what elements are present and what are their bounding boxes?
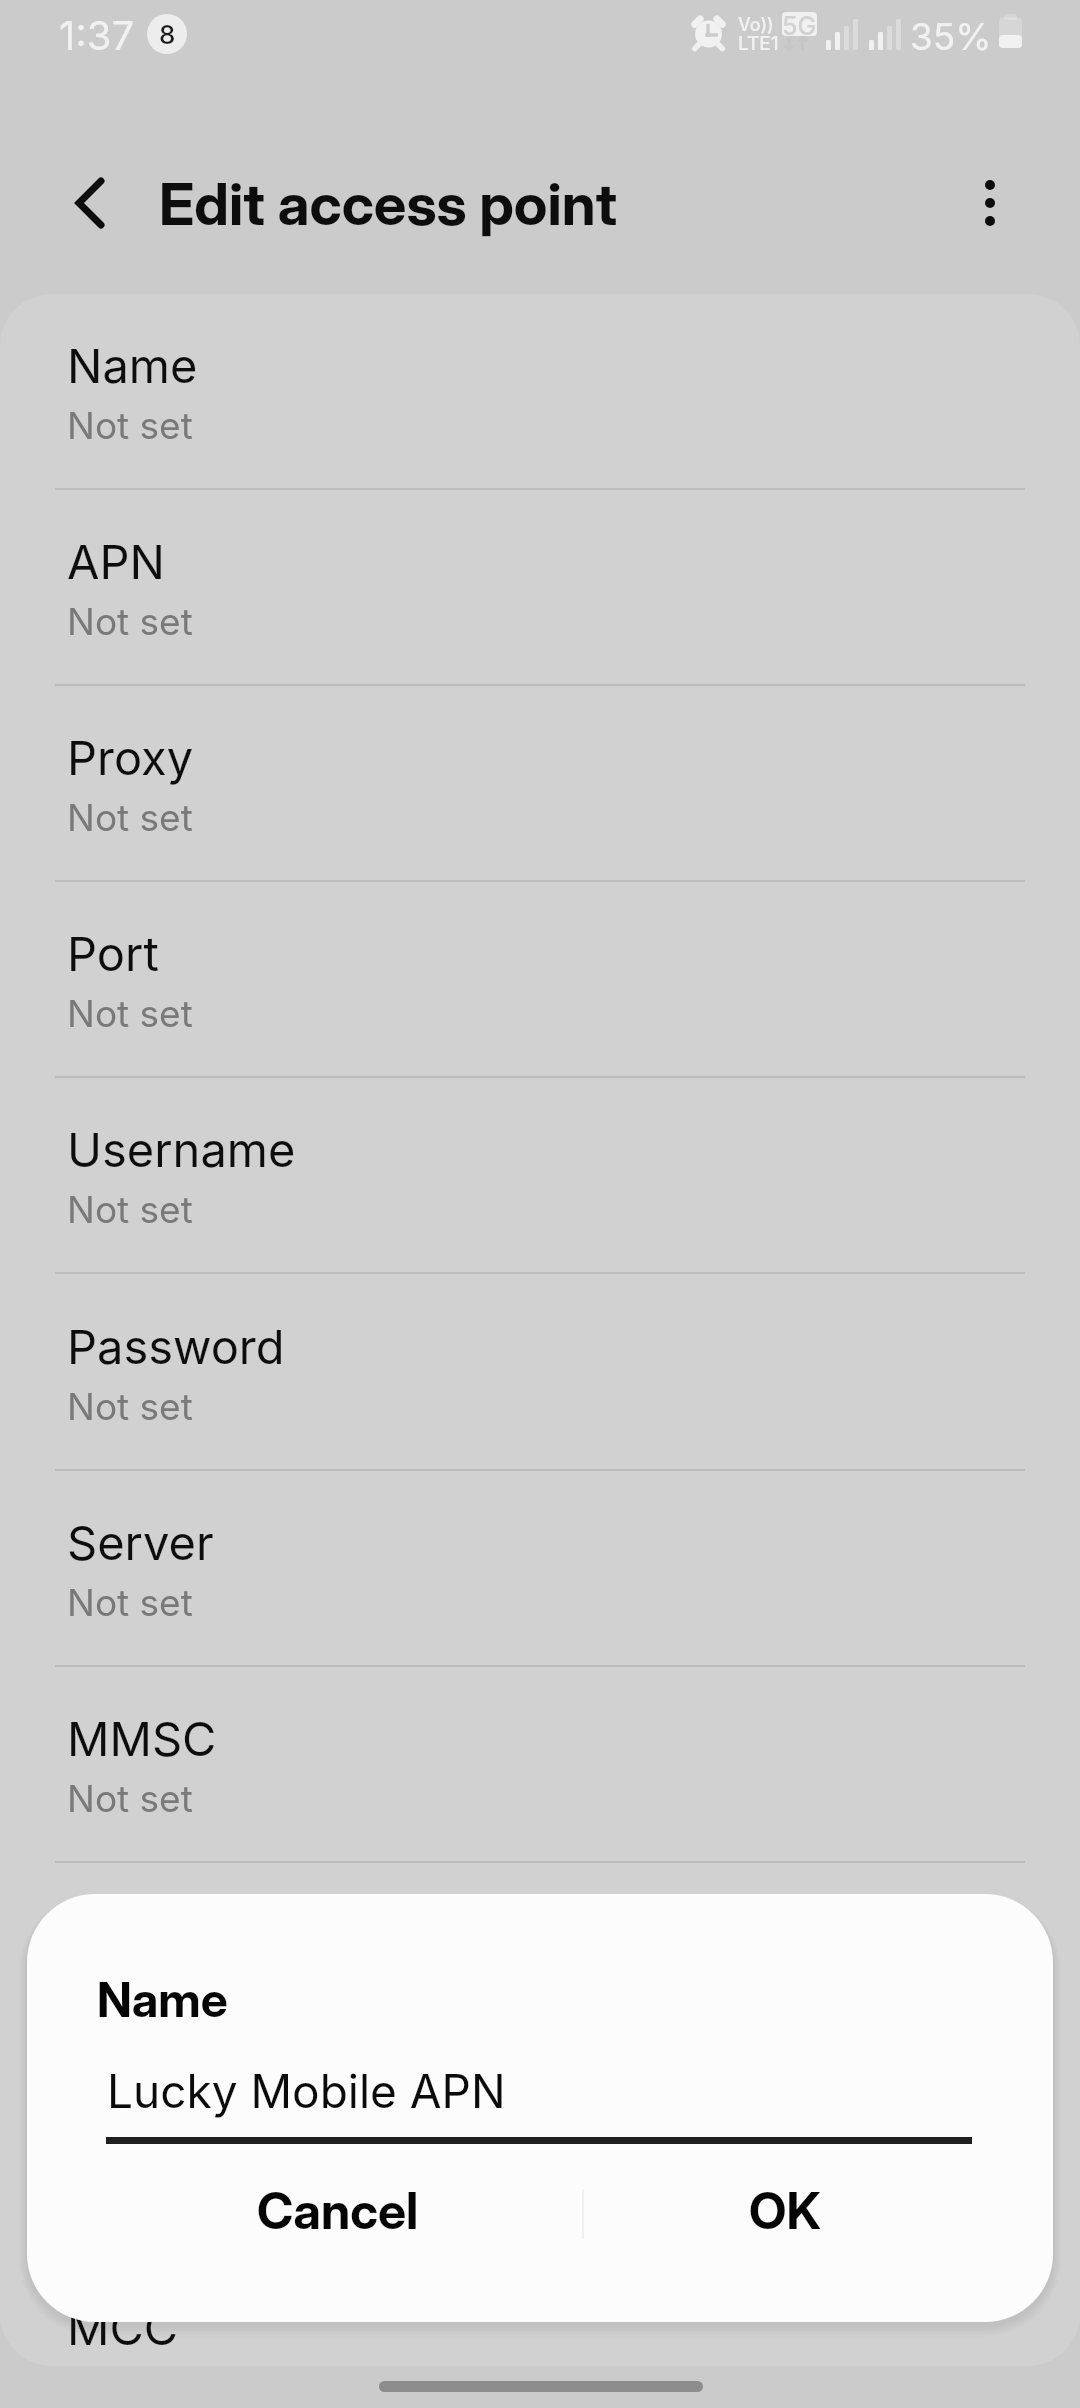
button[interactable]: OK (583, 2156, 1052, 2280)
button[interactable]: Password (0, 1275, 1080, 1471)
staticText: 8 (159, 19, 176, 50)
staticText: MMS port (67, 2102, 287, 2159)
staticText: Port (67, 925, 159, 982)
button[interactable]: Server (0, 1471, 1080, 1667)
staticText: Lucky Mobile APN (107, 2063, 506, 2119)
staticText: Edit access point (159, 169, 618, 239)
staticText: OK (749, 2181, 821, 2241)
staticText: Server (67, 1514, 214, 1571)
button[interactable]: MMSC (0, 1667, 1080, 1863)
button[interactable]: Lucky Mobile APN (106, 2034, 972, 2144)
staticText: Not set (67, 1972, 193, 2017)
button[interactable]: MCC (0, 2256, 1080, 2366)
staticText: Not set (67, 599, 193, 644)
button[interactable]: Username (0, 1078, 1080, 1274)
staticText: Username (67, 1121, 296, 1178)
staticText: Not set (67, 1384, 193, 1429)
staticText: Not set (67, 1776, 193, 1821)
staticText: Not set (67, 1187, 193, 1232)
button[interactable]: Name (0, 294, 1080, 490)
staticText: 5G (782, 12, 817, 35)
button[interactable]: Port (0, 882, 1080, 1078)
staticText: Not set (67, 403, 193, 448)
staticText: Password (67, 1318, 285, 1375)
staticText: 35% (910, 14, 992, 59)
staticText: 1:37 (59, 11, 135, 59)
button[interactable]: Proxy (0, 686, 1080, 882)
staticText: Proxy (67, 729, 194, 786)
staticText: Name (67, 337, 198, 394)
button[interactable]: MMS port (0, 2059, 1080, 2255)
staticText: LTE1 (738, 32, 779, 55)
staticText: Name (97, 1970, 228, 2028)
button[interactable]: MMS proxy (0, 1863, 1080, 2059)
staticText: Vo)) (738, 14, 774, 36)
staticText: Not set (67, 795, 193, 840)
staticText: APN (67, 533, 165, 590)
button[interactable]: More options (929, 123, 1049, 243)
staticText: Not set (67, 991, 193, 1036)
staticText: Cancel (257, 2181, 419, 2241)
button[interactable]: Cancel (27, 2156, 583, 2280)
staticText: MCC (67, 2299, 179, 2356)
staticText: Not set (67, 1580, 193, 1625)
button[interactable]: APN (0, 490, 1080, 686)
staticText: MMSC (67, 1710, 217, 1767)
button[interactable]: Navigate up (28, 117, 148, 237)
